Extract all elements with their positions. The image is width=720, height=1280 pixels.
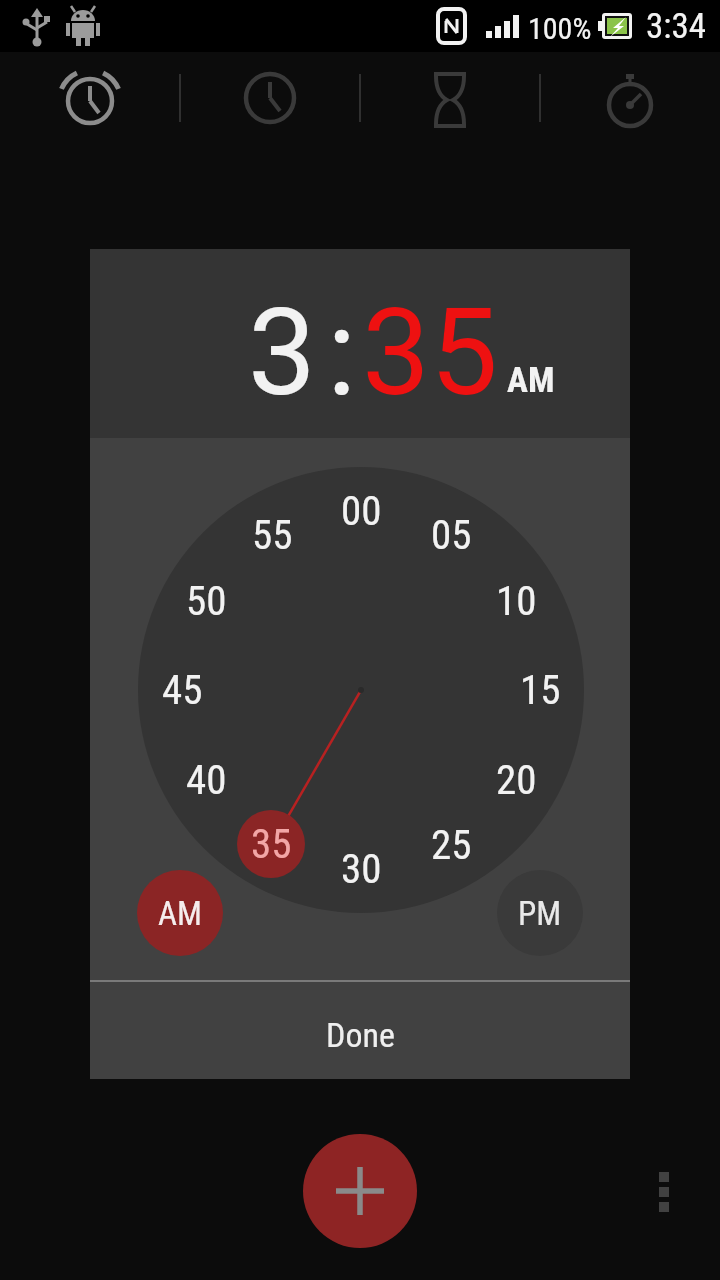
staticText: PM xyxy=(518,894,562,933)
staticText: 40 xyxy=(186,756,227,804)
button[interactable] xyxy=(570,60,690,144)
button[interactable] xyxy=(390,60,510,144)
staticText: : xyxy=(327,282,357,424)
button[interactable]: AM xyxy=(137,870,223,956)
staticText: 30 xyxy=(341,845,382,893)
button[interactable] xyxy=(303,1134,417,1248)
staticText: 50 xyxy=(186,577,227,625)
staticText: 15 xyxy=(520,666,561,714)
staticText: 3:34 xyxy=(646,6,707,47)
staticText: 10 xyxy=(496,577,537,625)
staticText: 20 xyxy=(496,756,537,804)
staticText: 35 xyxy=(251,820,292,868)
staticText: 55 xyxy=(252,511,293,559)
staticText: 05 xyxy=(431,511,472,559)
staticText: 100% xyxy=(528,11,592,46)
button[interactable]: 35 xyxy=(237,810,305,878)
button[interactable] xyxy=(30,60,150,144)
button[interactable] xyxy=(210,60,330,144)
button[interactable]: Done xyxy=(90,982,630,1079)
staticText: 45 xyxy=(162,666,203,714)
staticText: 00 xyxy=(341,487,382,535)
staticText: 35 xyxy=(362,282,499,424)
staticText: 3 xyxy=(248,282,317,424)
staticText: Done xyxy=(326,1015,395,1055)
staticText: AM xyxy=(158,894,202,933)
staticText: 25 xyxy=(431,821,472,869)
button[interactable] xyxy=(649,1162,679,1222)
staticText: AM xyxy=(507,360,555,401)
button[interactable]: PM xyxy=(497,870,583,956)
